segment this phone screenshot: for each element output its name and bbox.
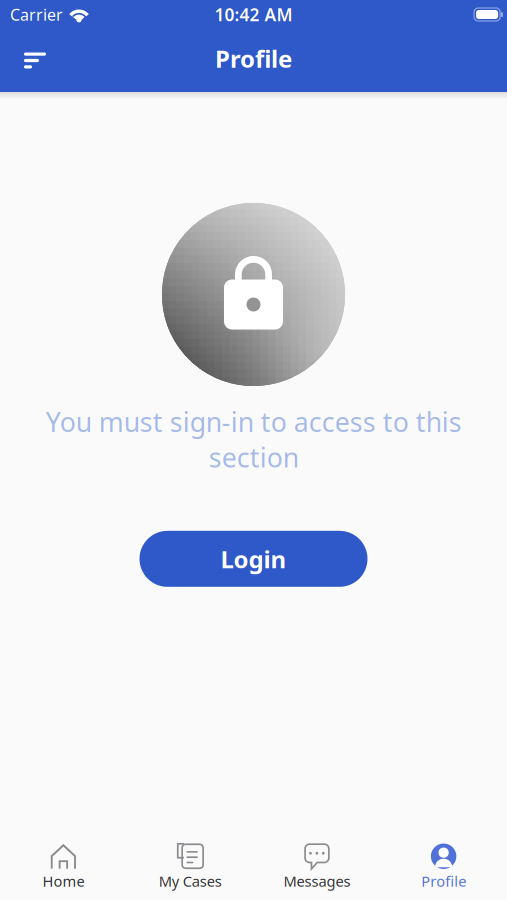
button[interactable]: Profile	[380, 832, 507, 900]
staticText: Home	[42, 871, 84, 891]
button[interactable]: Login	[139, 531, 367, 587]
staticText: Profile	[215, 43, 292, 74]
staticText: 10:42 AM	[214, 3, 292, 26]
staticText: My Cases	[159, 871, 222, 891]
staticText: Login	[220, 543, 286, 575]
button[interactable]: Menu	[0, 36, 66, 84]
button[interactable]: Messages	[253, 832, 380, 900]
staticText: Carrier	[10, 4, 63, 25]
staticText: You must sign-in to access to this secti…	[45, 404, 461, 475]
button[interactable]: Home	[0, 832, 127, 900]
staticText: Messages	[283, 871, 350, 891]
staticText: Profile	[421, 871, 466, 891]
button[interactable]: My Cases	[127, 832, 254, 900]
